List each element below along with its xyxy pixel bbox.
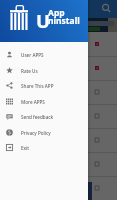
- staticText: Send feedback: [21, 114, 54, 120]
- button[interactable]: Exit: [0, 140, 88, 155]
- button[interactable]: Send feedback: [0, 109, 88, 124]
- button[interactable]: Rate Us: [0, 63, 88, 78]
- button[interactable]: [0, 128, 117, 152]
- button[interactable]: [0, 104, 117, 128]
- staticText: App: [48, 7, 65, 19]
- button[interactable]: [0, 80, 117, 104]
- staticText: Exit: [21, 145, 30, 151]
- staticText: Rate Us: [21, 68, 38, 74]
- staticText: More APPS: [21, 99, 45, 105]
- button[interactable]: User APPS: [0, 47, 88, 62]
- button[interactable]: Search: [101, 3, 112, 14]
- staticText: ninstall: [48, 15, 80, 27]
- staticText: U: [36, 8, 50, 33]
- button[interactable]: [0, 152, 117, 176]
- button[interactable]: [0, 32, 117, 56]
- button[interactable]: More APPS: [0, 94, 88, 109]
- button[interactable]: Share This APP: [0, 78, 88, 93]
- button[interactable]: [0, 56, 117, 80]
- staticText: User APPS: [21, 52, 44, 58]
- staticText: Privacy Policy: [21, 130, 51, 136]
- button[interactable]: Privacy Policy: [0, 125, 88, 140]
- button[interactable]: [0, 176, 117, 200]
- staticText: Share This APP: [21, 83, 54, 89]
